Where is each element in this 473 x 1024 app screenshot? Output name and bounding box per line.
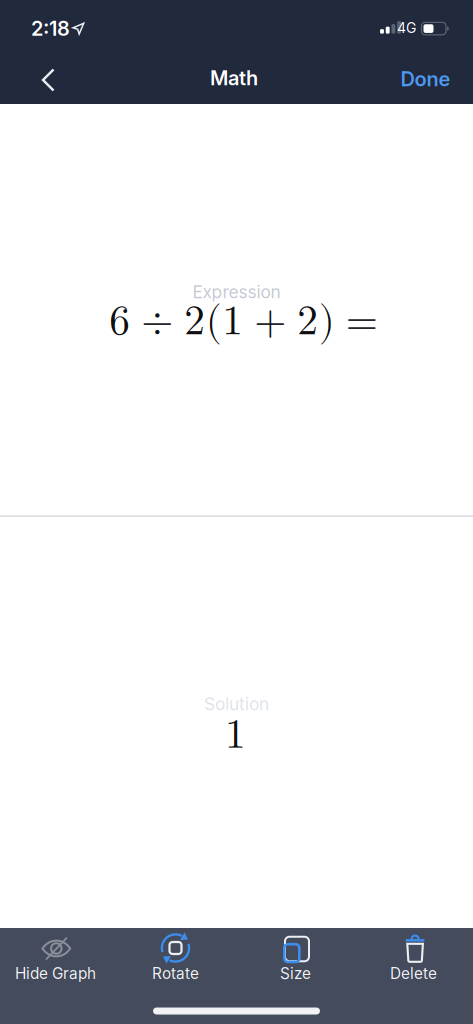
staticText: 4G	[397, 19, 416, 36]
staticText: Size	[280, 964, 311, 983]
button[interactable]: Rotate	[122, 928, 230, 990]
staticText: Delete	[390, 964, 437, 983]
button[interactable]: Delete	[361, 928, 469, 990]
staticText: Math	[210, 66, 258, 90]
staticText: 2:18	[31, 16, 70, 41]
staticText: Rotate	[152, 964, 199, 983]
staticText: Solution	[204, 693, 269, 714]
button[interactable]: Hide Graph	[2, 928, 110, 990]
button[interactable]: Done	[392, 57, 458, 101]
staticText: 6 ÷ 2(1 + 2) =	[109, 301, 378, 342]
staticText: Expression	[192, 281, 280, 302]
button[interactable]: Back	[26, 58, 70, 102]
staticText: Done	[400, 67, 450, 91]
button[interactable]: Size	[242, 928, 350, 990]
staticText: Hide Graph	[15, 964, 96, 983]
staticText: 1	[225, 714, 246, 756]
